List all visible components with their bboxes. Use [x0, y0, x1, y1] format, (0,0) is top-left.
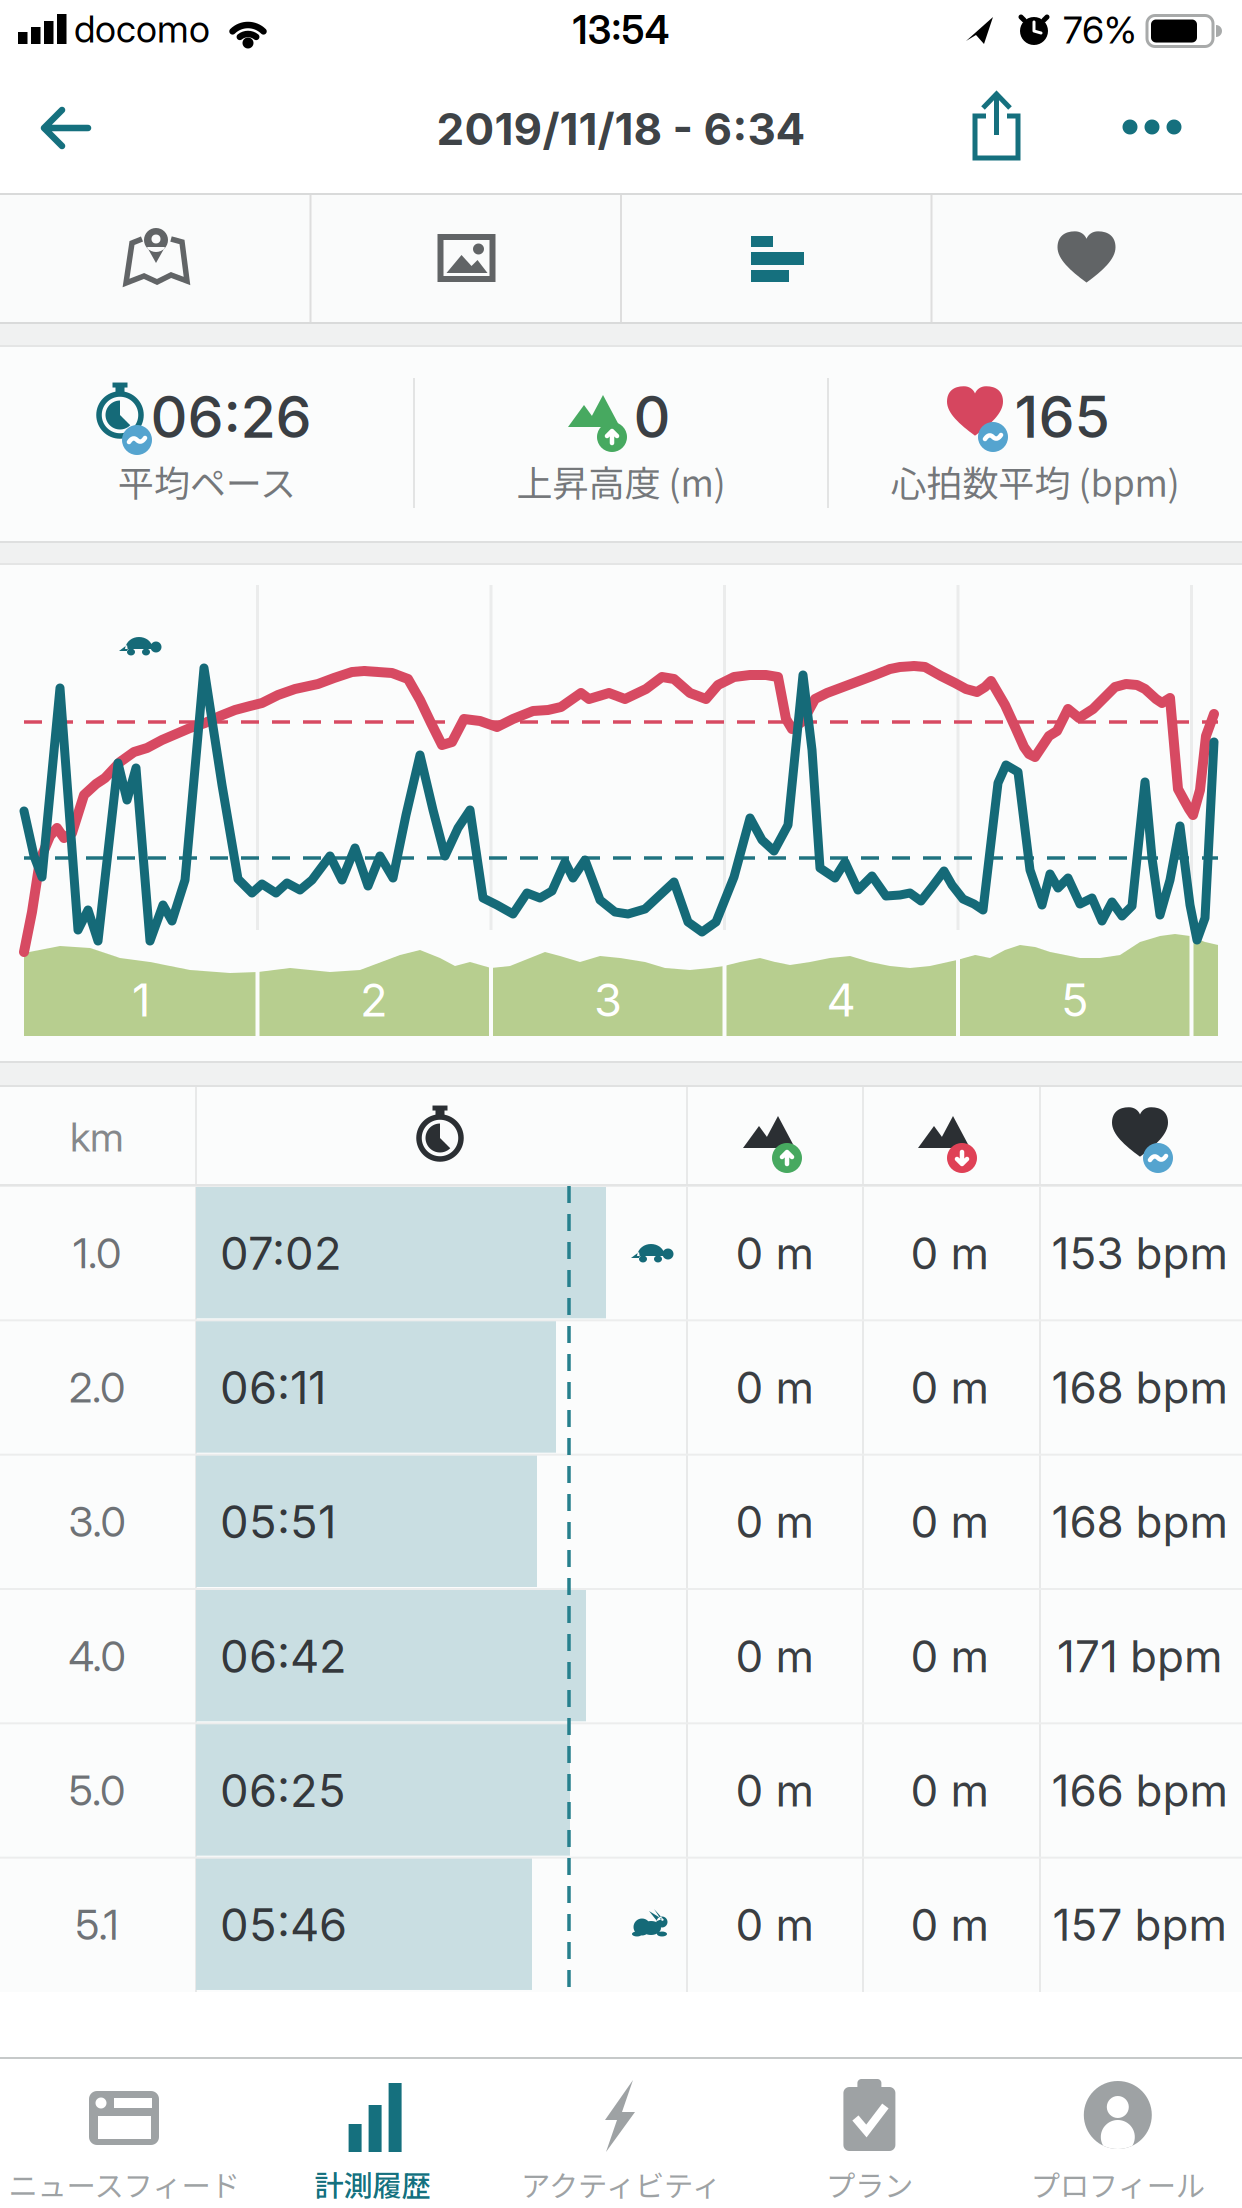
staticText: 計測履歴 — [315, 2163, 431, 2205]
staticText: 2 — [360, 973, 388, 1027]
staticText: 153 bpm — [1051, 1226, 1228, 1280]
staticText: 168 bpm — [1051, 1495, 1228, 1548]
staticText: 06:25 — [220, 1763, 346, 1818]
staticText: 4 — [826, 973, 855, 1027]
staticText: 0 m — [910, 1226, 989, 1280]
staticText: 168 bpm — [1051, 1361, 1228, 1414]
staticText: 165 — [1014, 382, 1109, 452]
staticText: docomo — [74, 6, 210, 52]
staticText: km — [70, 1113, 124, 1161]
button[interactable]: Photos — [311, 195, 619, 322]
staticText: 5 — [1061, 973, 1089, 1027]
staticText: 166 bpm — [1051, 1764, 1228, 1817]
staticText: 0 — [633, 382, 670, 452]
button[interactable]: Map — [1, 195, 309, 322]
staticText: 05:51 — [220, 1494, 336, 1549]
staticText: 171 bpm — [1057, 1629, 1223, 1683]
staticText: 0 m — [910, 1361, 989, 1414]
staticText: 2.0 — [69, 1362, 125, 1412]
staticText: 0 m — [735, 1226, 814, 1280]
staticText: 06:26 — [150, 382, 311, 452]
button[interactable]: プロフィール — [994, 2059, 1242, 2207]
button[interactable]: 計測履歴 — [249, 2059, 497, 2207]
staticText: 上昇高度 (m) — [516, 455, 725, 507]
staticText: 3 — [594, 973, 622, 1027]
staticText: ニュースフィード — [8, 2163, 239, 2205]
staticText: 0 m — [735, 1898, 814, 1951]
staticText: 0 m — [735, 1495, 814, 1548]
staticText: 5.0 — [69, 1765, 125, 1815]
staticText: 1 — [132, 973, 150, 1027]
staticText: 06:11 — [220, 1360, 326, 1415]
staticText: 4.0 — [68, 1631, 125, 1681]
staticText: 2019/11/18 - 6:34 — [436, 102, 805, 156]
staticText: 13:54 — [572, 7, 669, 53]
staticText: 平均ペース — [118, 455, 296, 507]
staticText: プラン — [826, 2163, 913, 2205]
button[interactable]: ニュースフィード — [0, 2059, 248, 2207]
staticText: 07:02 — [220, 1226, 342, 1281]
staticText: 5.1 — [75, 1900, 118, 1950]
staticText: アクティビティ — [521, 2163, 721, 2205]
button[interactable]: アクティビティ — [497, 2059, 745, 2207]
staticText: 05:46 — [220, 1897, 347, 1952]
button[interactable]: Share — [952, 85, 1042, 175]
staticText: 157 bpm — [1052, 1898, 1227, 1951]
staticText: 心拍数平均 (bpm) — [890, 455, 1179, 507]
staticText: 0 m — [735, 1764, 814, 1817]
button[interactable]: プラン — [745, 2059, 993, 2207]
staticText: 0 m — [910, 1495, 989, 1548]
staticText: 06:42 — [220, 1629, 347, 1684]
staticText: プロフィール — [1031, 2163, 1205, 2205]
staticText: 0 m — [910, 1764, 989, 1817]
staticText: 1.0 — [73, 1228, 121, 1278]
button[interactable]: Statistics — [622, 195, 930, 322]
staticText: 0 m — [735, 1361, 814, 1414]
button[interactable]: Back — [16, 78, 116, 178]
button[interactable]: More — [1107, 82, 1197, 172]
staticText: 0 m — [910, 1629, 989, 1683]
staticText: 0 m — [910, 1898, 989, 1951]
button[interactable]: Heart rate — [932, 195, 1240, 322]
staticText: 0 m — [735, 1629, 814, 1683]
staticText: 76% — [1063, 7, 1137, 53]
staticText: 3.0 — [68, 1497, 125, 1547]
